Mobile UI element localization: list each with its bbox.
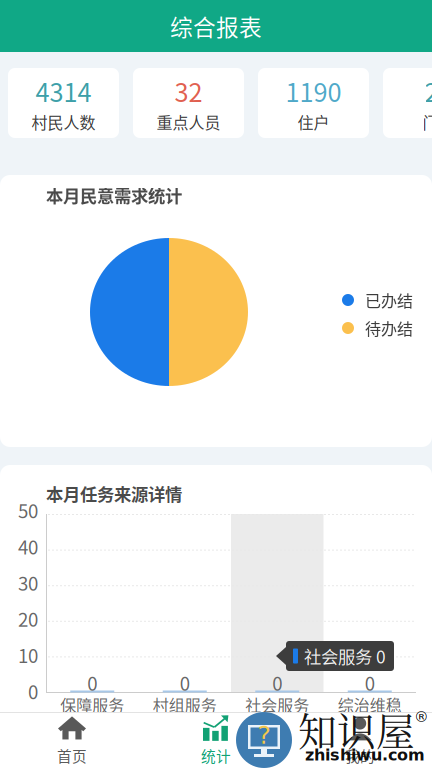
staticText: 重点人员 — [156, 110, 220, 133]
staticText: 10 — [18, 641, 38, 668]
staticText: 32 — [174, 73, 202, 109]
staticText: 26 — [424, 73, 432, 109]
staticText: 综合报表 — [170, 10, 262, 42]
staticText: 保障服务 — [60, 693, 124, 716]
staticText: 30 — [18, 569, 38, 596]
staticText: 社会服务 0 — [304, 643, 386, 669]
button[interactable]: 我的 — [288, 713, 432, 768]
staticText: 0 — [28, 678, 38, 705]
staticText: 门店 — [422, 110, 432, 133]
staticText: 知识屋 — [298, 701, 415, 757]
staticText: 首页 — [57, 745, 87, 766]
staticText: 社会服务 — [245, 693, 309, 716]
staticText: 40 — [18, 533, 38, 560]
button[interactable]: 26 — [383, 68, 432, 138]
staticText: 村民人数 — [31, 110, 95, 133]
staticText: 已办结 — [365, 288, 413, 312]
button[interactable]: 4314 — [8, 68, 119, 138]
staticText: 本月民意需求统计 — [46, 182, 182, 208]
staticText: ? — [257, 720, 270, 750]
staticText: 20 — [18, 605, 38, 632]
staticText: 0 — [272, 669, 282, 696]
staticText: 统计 — [201, 745, 231, 766]
staticText: 村组服务 — [153, 693, 217, 716]
staticText: 0 — [87, 669, 97, 696]
staticText: 0 — [180, 669, 190, 696]
staticText: zhishiwu.com — [305, 746, 425, 764]
staticText: ® — [414, 708, 429, 726]
staticText: 50 — [18, 497, 38, 524]
staticText: 本月任务来源详情 — [46, 481, 182, 506]
staticText: 4314 — [35, 73, 91, 109]
button[interactable]: 首页 — [0, 713, 144, 768]
staticText: 待办结 — [365, 316, 413, 340]
button[interactable]: 1190 — [258, 68, 369, 138]
staticText: 住户 — [297, 110, 329, 133]
staticText: 综治维稳 — [338, 693, 402, 716]
staticText: 1190 — [285, 73, 341, 109]
staticText: 我的 — [345, 745, 375, 766]
staticText: 0 — [365, 669, 375, 696]
button[interactable]: 统计 — [144, 713, 288, 768]
button[interactable]: 32 — [133, 68, 244, 138]
